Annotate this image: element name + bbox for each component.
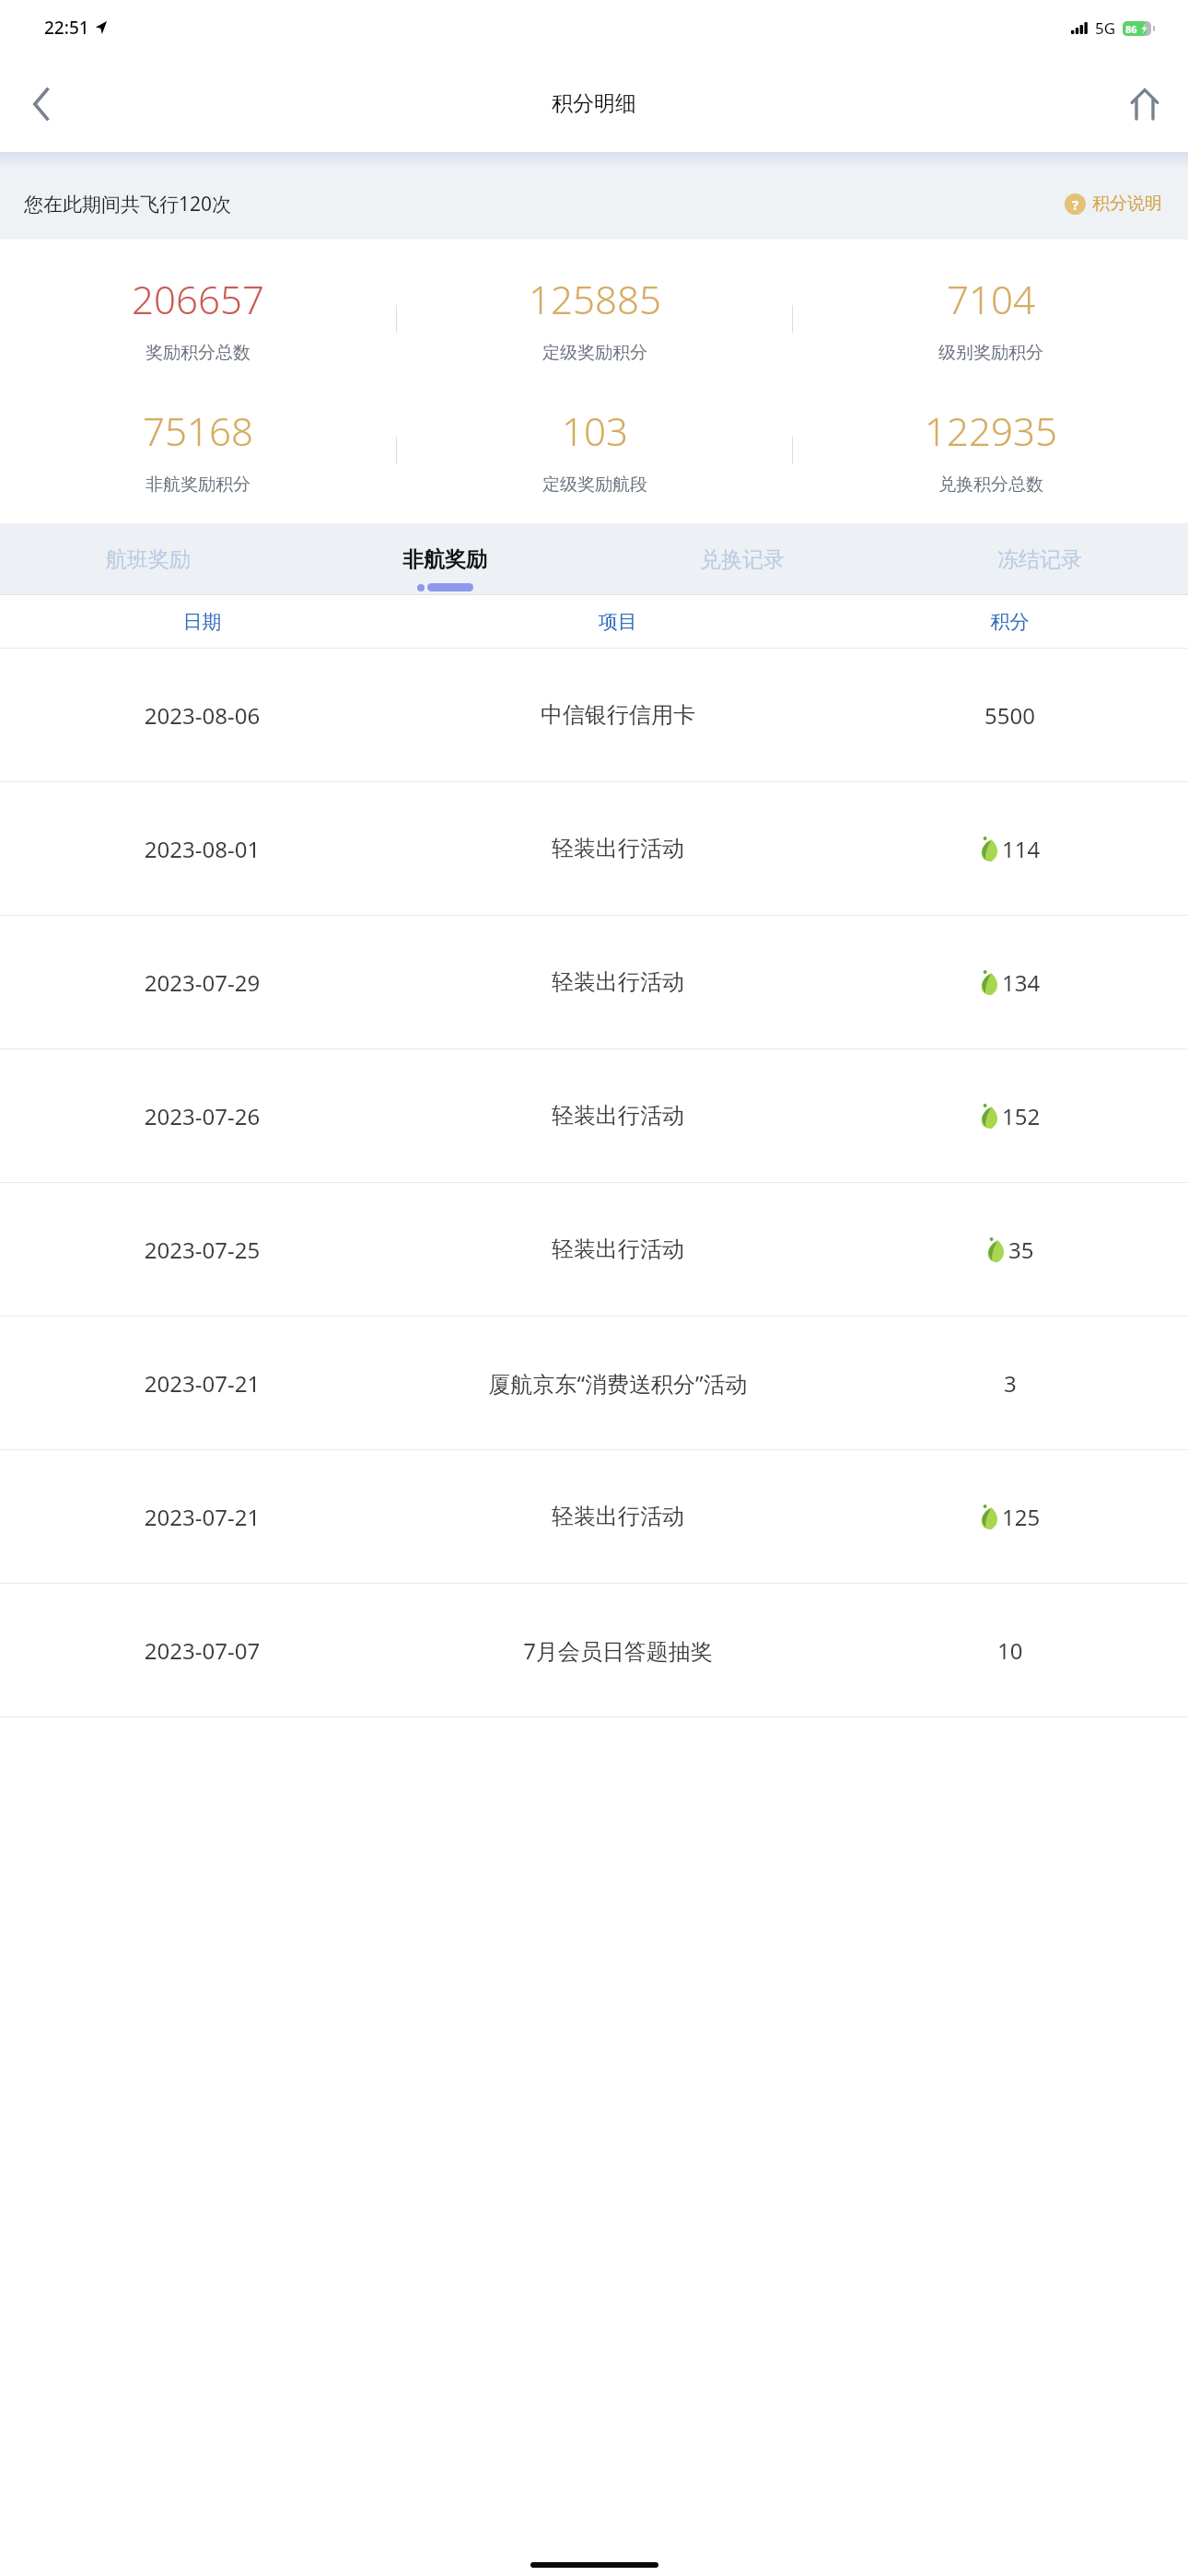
button[interactable]: ? (1065, 193, 1162, 215)
staticText: 冻结记录 (997, 546, 1082, 573)
staticText: 轻装出行活动 (404, 968, 832, 996)
staticText: 152 (1002, 1101, 1041, 1131)
staticText: 奖励积分总数 (146, 342, 250, 364)
staticText: 中信银行信用卡 (404, 701, 832, 729)
staticText: 积分明细 (552, 90, 636, 117)
staticText: 您在此期间共飞行120次 (24, 191, 232, 217)
button[interactable]: 75168 (0, 404, 396, 496)
staticText: 轻装出行活动 (404, 1235, 832, 1263)
staticText: 航班奖励 (106, 546, 191, 573)
button[interactable]: 122935 (793, 404, 1188, 496)
staticText: 125 (1002, 1502, 1041, 1532)
button[interactable]: Home (1116, 76, 1173, 133)
button[interactable]: 7104 (793, 273, 1188, 364)
staticText: 项目 (404, 610, 832, 634)
button[interactable]: 冻结记录 (891, 523, 1188, 595)
staticText: 5G (1095, 18, 1116, 39)
staticText: 206657 (132, 273, 264, 325)
staticText: 积分说明 (1092, 193, 1162, 215)
staticText: 2023-08-06 (0, 700, 404, 731)
staticText: 7104 (947, 273, 1035, 325)
staticText: 2023-08-01 (0, 834, 404, 864)
staticText: 2023-07-21 (0, 1368, 404, 1399)
button[interactable]: 2023-07-25 (0, 1183, 1188, 1317)
staticText: 积分 (832, 610, 1188, 634)
button[interactable]: 2023-08-06 (0, 649, 1188, 782)
button[interactable]: 航班奖励 (0, 523, 297, 595)
staticText: 3 (1004, 1368, 1017, 1399)
staticText: 5500 (984, 700, 1035, 731)
staticText: 非航奖励 (402, 546, 487, 573)
staticText: 125885 (529, 273, 661, 325)
button[interactable]: 2023-07-21 (0, 1317, 1188, 1450)
staticText: 86 (1125, 22, 1137, 36)
staticText: ? (1072, 195, 1079, 214)
staticText: 非航奖励积分 (146, 474, 250, 496)
staticText: 114 (1002, 834, 1041, 864)
staticText: 22:51 (44, 16, 89, 40)
staticText: 2023-07-21 (0, 1502, 404, 1532)
button[interactable]: 2023-07-26 (0, 1049, 1188, 1183)
staticText: 厦航京东“消费送积分”活动 (404, 1368, 832, 1399)
button[interactable]: 2023-07-29 (0, 916, 1188, 1049)
button[interactable]: 2023-07-21 (0, 1450, 1188, 1584)
button[interactable]: 兑换记录 (593, 523, 891, 595)
staticText: 日期 (0, 610, 404, 634)
staticText: 定级奖励积分 (542, 342, 647, 364)
staticText: 级别奖励积分 (938, 342, 1043, 364)
staticText: 2023-07-29 (0, 967, 404, 998)
staticText: 定级奖励航段 (542, 474, 647, 496)
staticText: 轻装出行活动 (404, 1503, 832, 1530)
staticText: 103 (562, 404, 628, 457)
staticText: 2023-07-25 (0, 1235, 404, 1265)
button[interactable]: 非航奖励 (297, 523, 593, 595)
staticText: 35 (1008, 1235, 1034, 1265)
button[interactable]: 2023-08-01 (0, 782, 1188, 916)
staticText: 轻装出行活动 (404, 1102, 832, 1130)
staticText: 7月会员日答题抽奖 (404, 1635, 832, 1666)
staticText: 兑换记录 (700, 546, 785, 573)
button[interactable]: 2023-07-07 (0, 1584, 1188, 1717)
staticText: 兑换积分总数 (938, 474, 1043, 496)
staticText: 轻装出行活动 (404, 835, 832, 862)
staticText: 75168 (143, 404, 253, 457)
button[interactable]: 206657 (0, 273, 396, 364)
staticText: 2023-07-07 (0, 1635, 404, 1666)
staticText: 122935 (925, 404, 1057, 457)
button[interactable]: Back (13, 76, 70, 133)
staticText: 2023-07-26 (0, 1101, 404, 1131)
staticText: 134 (1002, 967, 1041, 998)
staticText: 10 (997, 1635, 1023, 1666)
button[interactable]: 125885 (397, 273, 792, 364)
button[interactable]: 103 (397, 404, 792, 496)
